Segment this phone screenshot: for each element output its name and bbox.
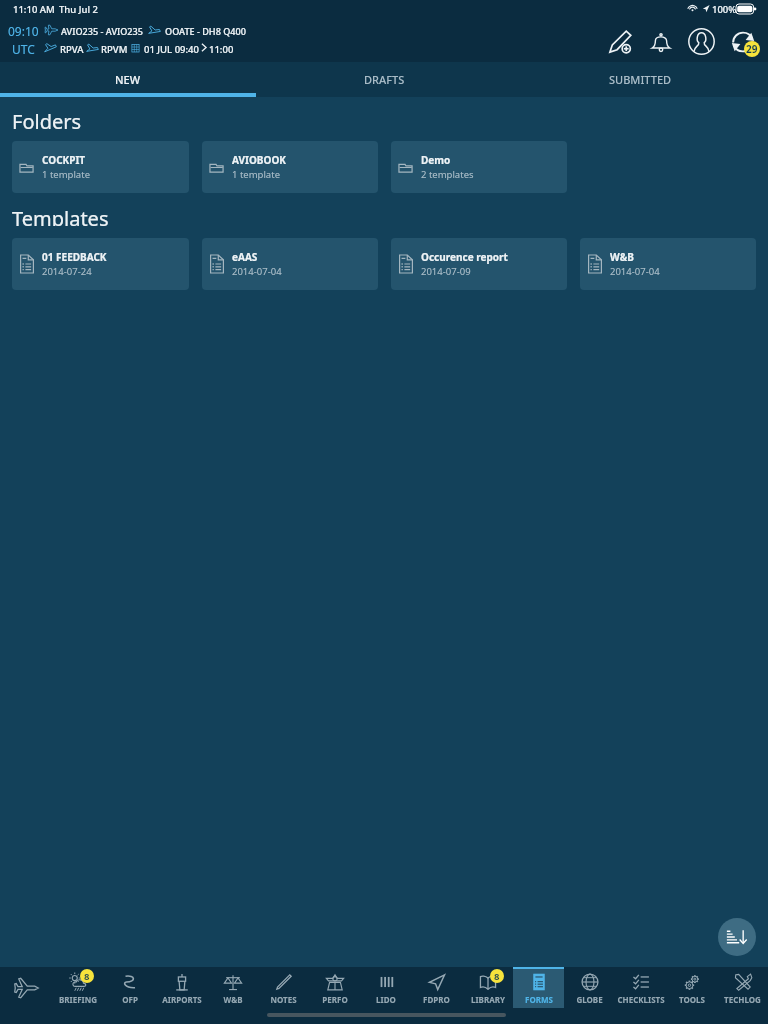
staticText: BRIEFING xyxy=(59,994,97,1005)
button[interactable]: W&B xyxy=(207,967,258,1008)
button[interactable]: AIRPORTS xyxy=(156,967,207,1008)
staticText: 01 JUL 09:40 xyxy=(144,43,199,56)
button[interactable]: BRIEFING xyxy=(52,967,104,1008)
staticText: PERFO xyxy=(322,994,348,1005)
button[interactable]: Notifications xyxy=(640,21,681,62)
staticText: FDPRO xyxy=(423,994,450,1005)
staticText: TECHLOG xyxy=(724,994,761,1005)
staticText: 1 template xyxy=(42,168,90,181)
staticText: AVIO235 - AVIO235 xyxy=(61,25,143,37)
staticText: AIRPORTS xyxy=(162,994,202,1005)
staticText: W&B xyxy=(610,250,634,264)
button[interactable]: TECHLOG xyxy=(717,967,768,1008)
staticText: TOOLS xyxy=(679,994,705,1005)
button[interactable]: Home xyxy=(0,967,52,1008)
button[interactable]: Sync xyxy=(722,21,763,62)
button[interactable]: FORMS xyxy=(513,967,564,1008)
staticText: OFP xyxy=(122,994,138,1005)
staticText: Demo xyxy=(421,153,451,167)
staticText: 2 templates xyxy=(421,168,474,181)
button[interactable]: W&B xyxy=(580,238,756,290)
button[interactable]: Profile xyxy=(681,21,722,62)
staticText: NEW xyxy=(115,72,141,87)
button[interactable]: NEW xyxy=(0,62,256,97)
button[interactable]: DRAFTS xyxy=(256,62,512,97)
staticText: 09:10 xyxy=(8,23,39,39)
staticText: 2014-07-04 xyxy=(610,265,660,278)
staticText: FORMS xyxy=(525,994,553,1005)
staticText: LIBRARY xyxy=(471,994,505,1005)
staticText: GLOBE xyxy=(576,994,603,1005)
staticText: Occurence report xyxy=(421,250,508,264)
staticText: Templates xyxy=(12,205,109,226)
staticText: 100% xyxy=(712,3,737,16)
button[interactable]: SUBMITTED xyxy=(512,62,768,97)
button[interactable]: OFP xyxy=(104,967,156,1008)
staticText: 11:10 AM xyxy=(13,3,55,16)
staticText: SUBMITTED xyxy=(609,72,672,87)
button[interactable]: 01 FEEDBACK xyxy=(12,238,189,290)
staticText: COCKPIT xyxy=(42,153,86,167)
staticText: Thu Jul 2 xyxy=(59,3,98,16)
staticText: LIDO xyxy=(376,994,396,1005)
button[interactable]: Demo xyxy=(391,141,567,193)
button[interactable]: GLOBE xyxy=(564,967,615,1008)
button[interactable]: PERFO xyxy=(309,967,360,1008)
button[interactable]: New note xyxy=(599,21,640,62)
staticText: RPVA xyxy=(60,43,84,56)
button[interactable]: TOOLS xyxy=(666,967,717,1008)
staticText: 8 xyxy=(84,970,90,983)
staticText: UTC xyxy=(12,41,35,57)
staticText: 2014-07-09 xyxy=(421,265,471,278)
staticText: 29 xyxy=(746,42,758,56)
button[interactable]: LIDO xyxy=(360,967,411,1008)
staticText: W&B xyxy=(223,994,243,1005)
staticText: DRAFTS xyxy=(364,72,405,87)
staticText: 11:00 xyxy=(209,43,234,56)
staticText: NOTES xyxy=(270,994,297,1005)
staticText: 2014-07-24 xyxy=(42,265,92,278)
staticText: 8 xyxy=(494,970,500,983)
button[interactable]: CHECKLISTS xyxy=(615,967,666,1008)
button[interactable]: eAAS xyxy=(202,238,378,290)
button[interactable]: AVIOBOOK xyxy=(202,141,378,193)
staticText: AVIOBOOK xyxy=(232,153,286,167)
staticText: eAAS xyxy=(232,250,258,264)
staticText: OOATE - DH8 Q400 xyxy=(165,25,246,37)
button[interactable]: FDPRO xyxy=(411,967,462,1008)
staticText: 01 FEEDBACK xyxy=(42,250,107,264)
button[interactable]: COCKPIT xyxy=(12,141,189,193)
staticText: Folders xyxy=(12,108,82,129)
staticText: CHECKLISTS xyxy=(617,994,665,1005)
staticText: 2014-07-04 xyxy=(232,265,282,278)
staticText: 1 template xyxy=(232,168,280,181)
staticText: RPVM xyxy=(101,43,128,56)
button[interactable]: Occurence report xyxy=(391,238,567,290)
button[interactable]: Sort xyxy=(718,918,756,956)
button[interactable]: NOTES xyxy=(258,967,309,1008)
button[interactable]: LIBRARY xyxy=(462,967,513,1008)
